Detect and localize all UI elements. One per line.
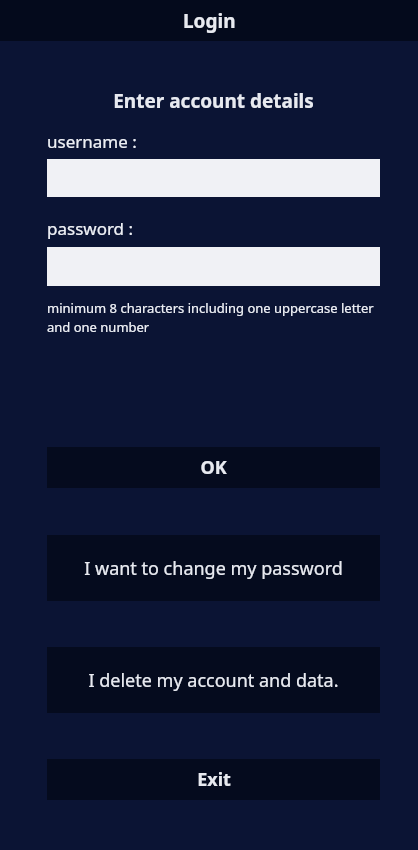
staticText: Exit: [197, 767, 231, 792]
staticText: minimum 8 characters including one upper…: [47, 299, 380, 336]
button[interactable]: I delete my account and data.: [47, 647, 380, 713]
staticText: I delete my account and data.: [88, 668, 339, 693]
staticText: Login: [183, 8, 236, 34]
button[interactable]: OK: [47, 447, 380, 488]
button[interactable]: I want to change my password: [47, 535, 380, 601]
staticText: OK: [200, 455, 227, 480]
button[interactable]: Exit: [47, 759, 380, 800]
staticText: Enter account details: [113, 88, 314, 114]
staticText: I want to change my password: [84, 556, 343, 581]
staticText: username :: [47, 130, 137, 153]
staticText: password :: [47, 217, 134, 240]
